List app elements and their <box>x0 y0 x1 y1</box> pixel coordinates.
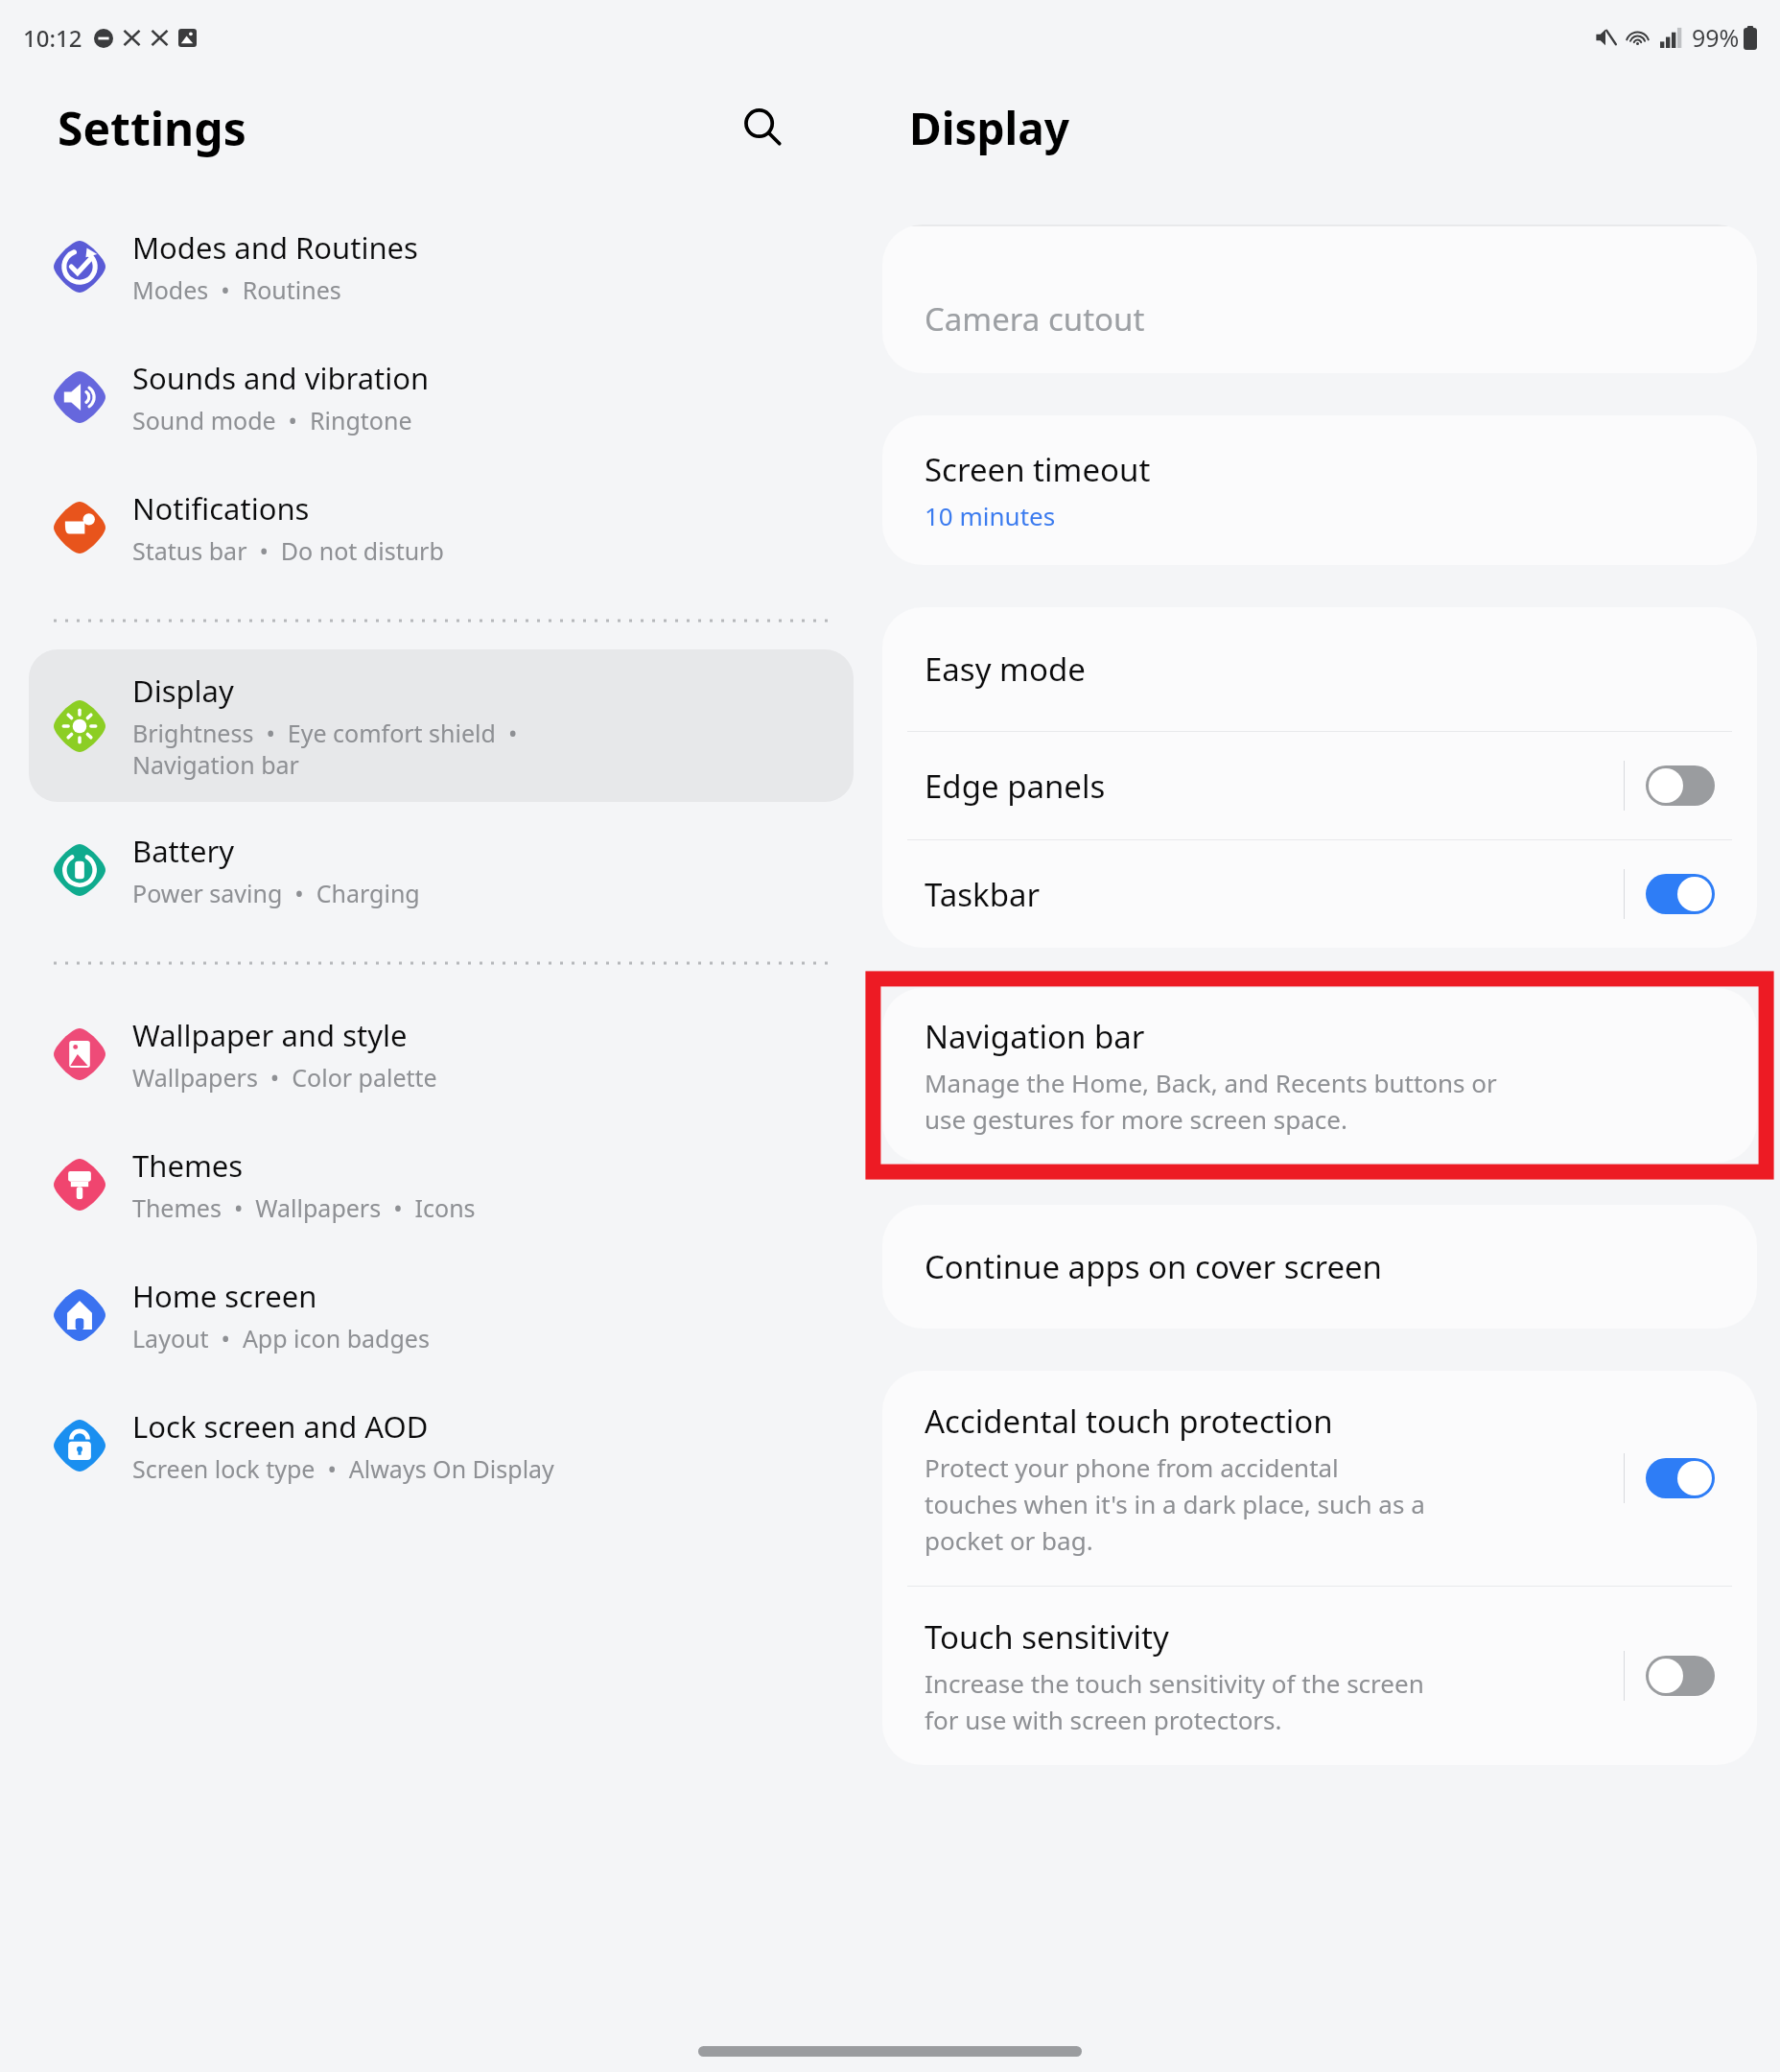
staticText: Themes <box>132 1145 244 1186</box>
staticText: Manage the Home, Back, and Recents butto… <box>925 1066 1497 1136</box>
button[interactable]: Off <box>1646 765 1715 806</box>
button[interactable]: Taskbar <box>882 840 1757 948</box>
staticText: Protect your phone from accidental touch… <box>925 1450 1425 1557</box>
button[interactable]: Off <box>1646 1656 1715 1696</box>
button[interactable]: Continue apps on cover screen <box>882 1205 1757 1329</box>
staticText: 99% <box>1692 21 1740 54</box>
button[interactable]: Wallpaper and style <box>29 992 854 1117</box>
staticText: Sounds and vibration <box>132 358 430 398</box>
staticText: 10:12 <box>23 22 82 54</box>
staticText: Themes • Wallpapers • Icons <box>132 1191 476 1224</box>
staticText: Display <box>909 98 1070 158</box>
button[interactable]: Display <box>29 649 854 802</box>
staticText: Wallpapers • Color palette <box>132 1061 437 1094</box>
button[interactable]: Battery <box>29 808 854 932</box>
staticText: Display <box>132 671 234 711</box>
staticText: Navigation bar <box>925 1015 1145 1058</box>
staticText: Modes and Routines <box>132 227 418 268</box>
staticText: Touch sensitivity <box>925 1615 1169 1659</box>
staticText: Wallpaper and style <box>132 1015 408 1055</box>
staticText: Edge panels <box>925 765 1106 808</box>
staticText: Layout • App icon badges <box>132 1322 430 1354</box>
button[interactable]: Touch sensitivity <box>882 1587 1757 1765</box>
staticText: Camera cutout <box>925 297 1145 341</box>
staticText: Screen lock type • Always On Display <box>132 1452 554 1485</box>
button[interactable]: Edge panels <box>882 732 1757 839</box>
button[interactable]: Navigation bar <box>882 988 1757 1163</box>
button[interactable]: On <box>1646 874 1715 914</box>
staticText: Accidental touch protection <box>925 1400 1333 1443</box>
staticText: Increase the touch sensitivity of the sc… <box>925 1666 1424 1736</box>
staticText: Screen timeout <box>925 448 1151 491</box>
staticText: Continue apps on cover screen <box>925 1245 1383 1288</box>
staticText: Status bar • Do not disturb <box>132 534 444 567</box>
staticText: Settings <box>58 97 246 159</box>
button[interactable]: Accidental touch protection <box>882 1371 1757 1586</box>
button[interactable]: Lock screen and AOD <box>29 1383 854 1508</box>
staticText: Modes • Routines <box>132 273 341 306</box>
button[interactable]: Modes and Routines <box>29 204 854 329</box>
staticText: Easy mode <box>925 647 1086 691</box>
staticText: Battery <box>132 831 235 871</box>
button[interactable]: Search <box>729 93 798 162</box>
staticText: Home screen <box>132 1276 317 1316</box>
staticText: Taskbar <box>925 873 1041 916</box>
button[interactable]: Home screen <box>29 1253 854 1377</box>
button[interactable]: Sounds and vibration <box>29 335 854 459</box>
staticText: 10 minutes <box>925 499 1056 532</box>
button[interactable]: Easy mode <box>882 607 1757 731</box>
button[interactable]: On <box>1646 1458 1715 1498</box>
button[interactable]: Screen timeout <box>882 415 1757 565</box>
staticText: Power saving • Charging <box>132 877 420 909</box>
button[interactable]: Notifications <box>29 465 854 590</box>
staticText: Notifications <box>132 488 310 529</box>
button[interactable]: Themes <box>29 1122 854 1247</box>
staticText: Sound mode • Ringtone <box>132 404 412 436</box>
staticText: Brightness • Eye comfort shield • Naviga… <box>132 717 518 781</box>
staticText: Lock screen and AOD <box>132 1406 429 1447</box>
